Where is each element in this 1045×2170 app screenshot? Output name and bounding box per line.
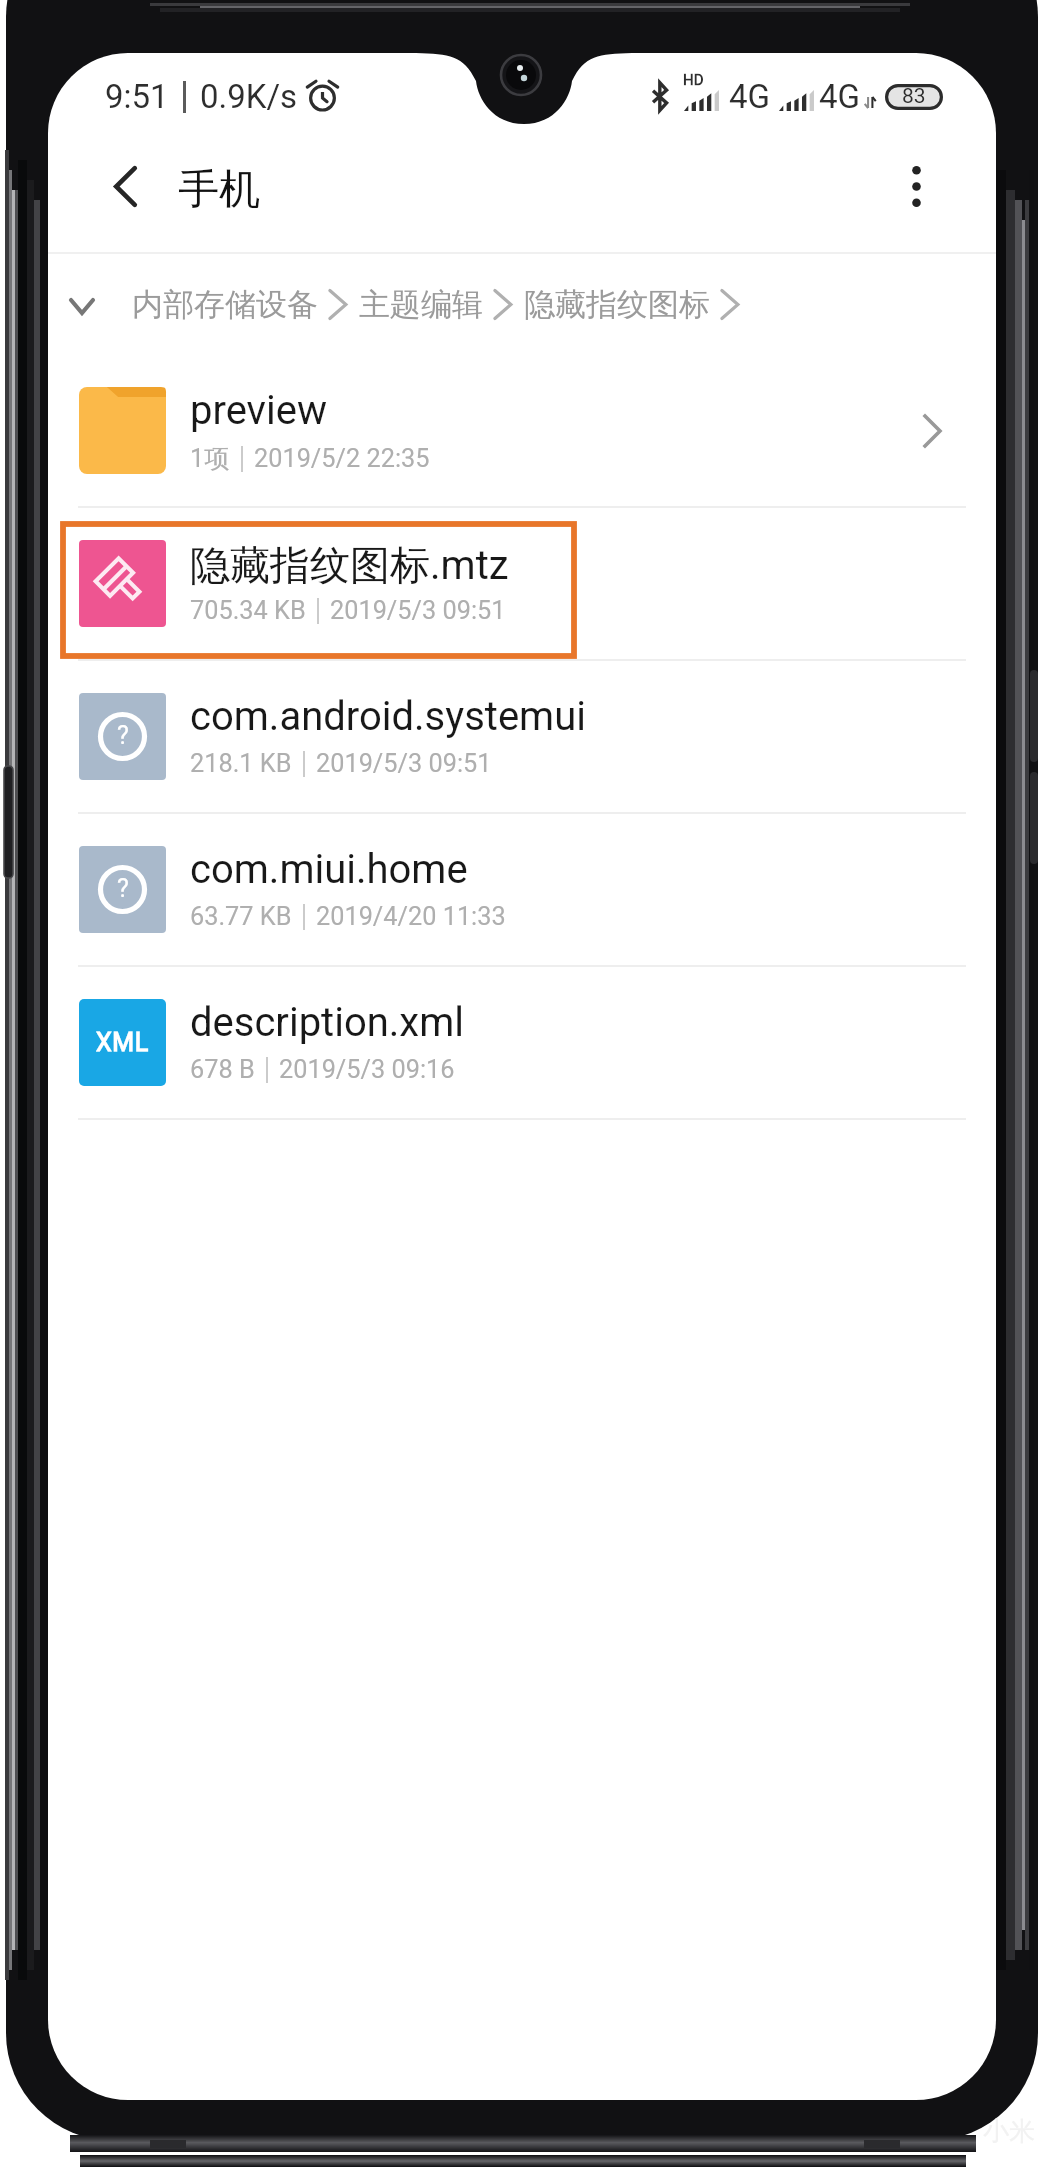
staticText: 2019/4/20 11:33 <box>316 902 506 932</box>
staticText: 内部存储设备 <box>132 285 318 324</box>
staticText: 4G <box>819 77 861 116</box>
staticText: 手机 <box>178 164 260 216</box>
staticText: 705.34 KB <box>190 596 306 626</box>
staticText: 2019/5/3 09:51 <box>316 749 492 779</box>
staticText: XML <box>96 1028 149 1057</box>
button[interactable]: XML <box>48 967 996 1118</box>
staticText: com.miui.home <box>190 846 468 893</box>
button[interactable]: More options <box>884 154 948 218</box>
staticText: 83 <box>902 84 926 109</box>
staticText: description.xml <box>190 999 465 1046</box>
staticText: 1项 <box>190 443 230 475</box>
staticText: 4G <box>729 77 771 116</box>
staticText: 2019/5/3 09:51 <box>330 596 506 626</box>
staticText: com.android.systemui <box>190 693 586 740</box>
staticText: 小米 <box>983 2115 1035 2148</box>
button[interactable]: ? <box>48 814 996 965</box>
staticText: 9:51 <box>105 77 169 116</box>
staticText: 隐藏指纹图标.mtz <box>190 540 509 590</box>
button[interactable]: Back <box>93 154 157 218</box>
staticText: HD <box>683 71 704 89</box>
staticText: 678 B <box>190 1055 255 1085</box>
staticText: 2019/5/3 09:16 <box>279 1055 455 1085</box>
staticText: 218.1 KB <box>190 749 292 779</box>
staticText: ? <box>117 721 129 750</box>
staticText: 隐藏指纹图标 <box>524 285 710 324</box>
staticText: 0.9K/s <box>200 77 298 116</box>
button[interactable]: preview <box>48 355 996 506</box>
button[interactable]: 内部存储设备 <box>48 254 996 355</box>
staticText: 2019/5/2 22:35 <box>254 444 430 474</box>
button[interactable]: ? <box>48 661 996 812</box>
staticText: 63.77 KB <box>190 902 292 932</box>
staticText: preview <box>190 387 327 434</box>
staticText: ? <box>117 874 129 903</box>
staticText: 主题编辑 <box>359 285 483 324</box>
button[interactable]: 隐藏指纹图标.mtz <box>48 508 996 659</box>
